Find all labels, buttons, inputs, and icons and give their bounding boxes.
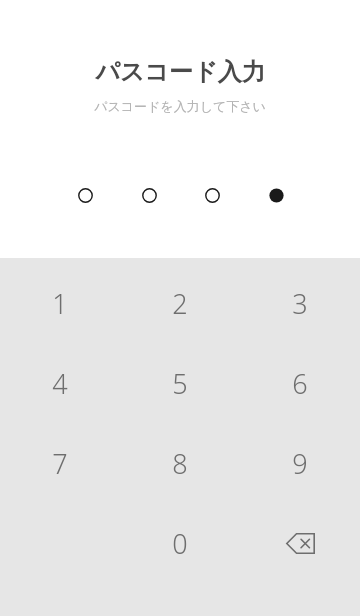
button[interactable]: 4 bbox=[0, 343, 120, 423]
staticText: 8 bbox=[172, 445, 188, 482]
button[interactable]: 7 bbox=[0, 423, 120, 503]
staticText: パスコード入力 bbox=[95, 57, 266, 87]
button[interactable]: 3 bbox=[240, 263, 360, 343]
staticText: 3 bbox=[292, 285, 308, 322]
button[interactable]: 1 bbox=[0, 263, 120, 343]
staticText: 6 bbox=[292, 365, 308, 402]
staticText: 4 bbox=[52, 365, 68, 402]
button[interactable]: 5 bbox=[120, 343, 240, 423]
button[interactable]: 8 bbox=[120, 423, 240, 503]
button[interactable]: Backspace bbox=[240, 503, 360, 583]
button[interactable]: 2 bbox=[120, 263, 240, 343]
staticText: 5 bbox=[172, 365, 188, 402]
staticText: 0 bbox=[172, 525, 188, 562]
button[interactable]: 6 bbox=[240, 343, 360, 423]
staticText: 7 bbox=[52, 445, 68, 482]
staticText: パスコードを入力して下さい bbox=[94, 98, 266, 114]
staticText: 1 bbox=[52, 285, 68, 322]
button[interactable]: 9 bbox=[240, 423, 360, 503]
staticText: 9 bbox=[292, 445, 308, 482]
staticText: 2 bbox=[172, 285, 188, 322]
button[interactable]: 0 bbox=[120, 503, 240, 583]
